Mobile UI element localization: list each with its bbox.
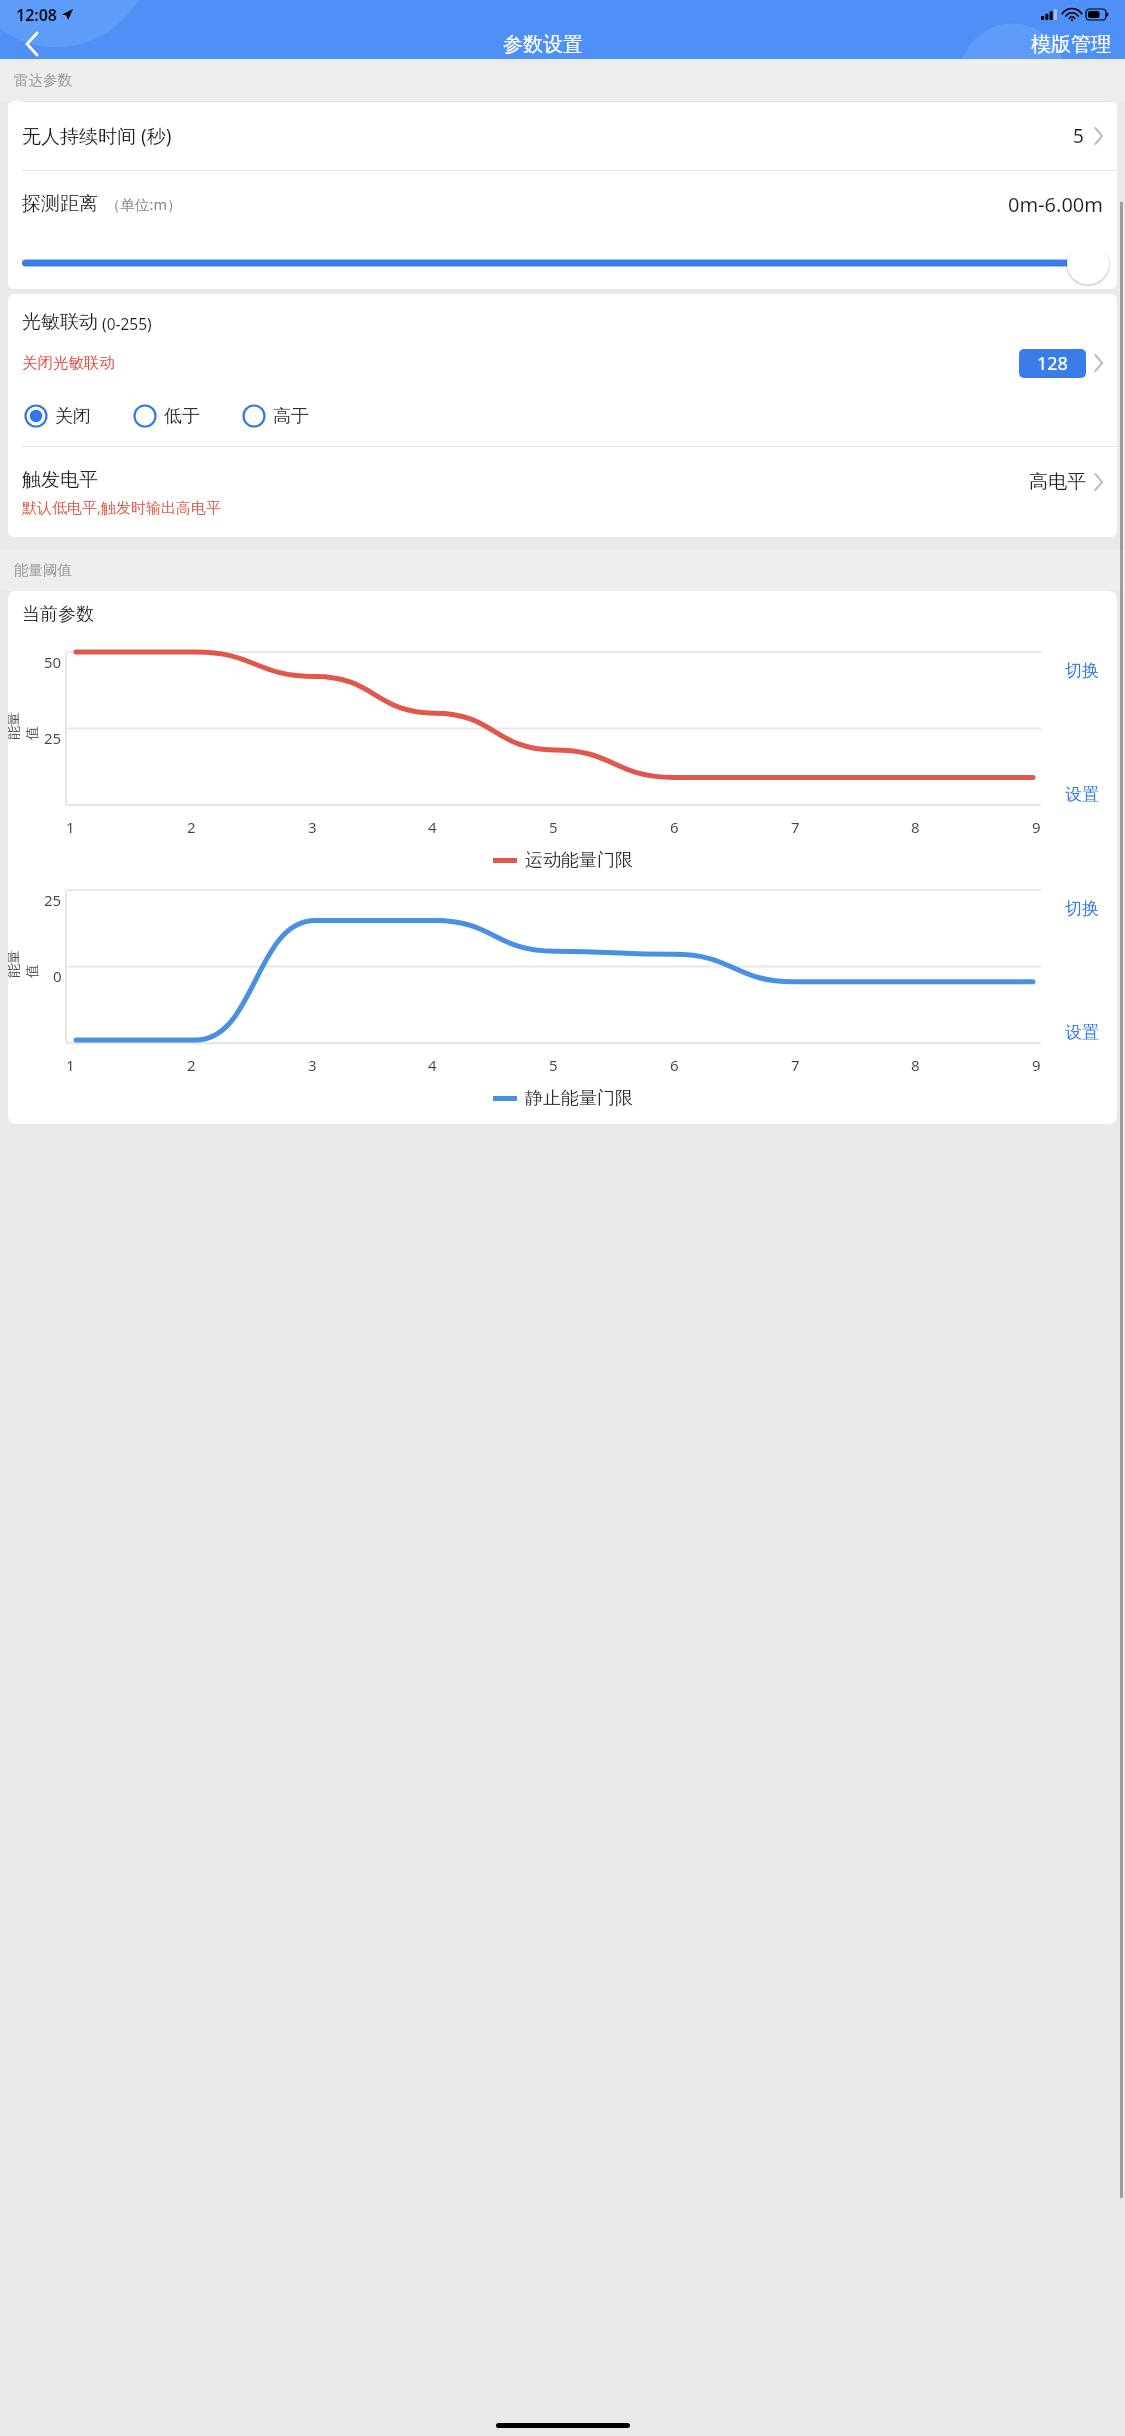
button[interactable]: 128 — [1019, 349, 1086, 378]
staticText: 1 — [66, 817, 75, 837]
staticText: 8 — [911, 1055, 920, 1075]
button[interactable]: 切换 — [1059, 892, 1105, 925]
staticText: 高电平 — [1029, 470, 1086, 494]
staticText: 当前参数 — [22, 603, 94, 626]
staticText: 7 — [791, 1055, 800, 1075]
staticText: 50 — [44, 652, 62, 672]
staticText: 4 — [428, 1055, 437, 1075]
staticText: 0m-6.00m — [1008, 191, 1103, 218]
staticText: 设置 — [1065, 784, 1099, 805]
button[interactable]: 模版管理 — [1023, 29, 1125, 59]
staticText: 7 — [791, 817, 800, 837]
staticText: 2 — [187, 1055, 196, 1075]
staticText: 3 — [308, 1055, 317, 1075]
staticText: 3 — [308, 817, 317, 837]
staticText: 探测距离 — [22, 192, 98, 216]
staticText: 6 — [670, 817, 679, 837]
staticText: 128 — [1037, 351, 1068, 376]
staticText: 6 — [670, 1055, 679, 1075]
button[interactable]: 触发电平 — [8, 447, 1117, 537]
staticText: 默认低电平,触发时输出高电平 — [22, 497, 222, 517]
button[interactable]: Back — [0, 29, 64, 59]
button[interactable]: 设置 — [1059, 1016, 1105, 1049]
staticText: 5 — [549, 817, 558, 837]
staticText: 切换 — [1065, 660, 1099, 681]
staticText: 5 — [1073, 123, 1084, 149]
staticText: 光敏联动 — [22, 310, 98, 334]
staticText: 12:08 — [16, 4, 58, 26]
staticText: 无人持续时间 (秒) — [22, 123, 172, 149]
staticText: 能量值 — [8, 948, 41, 978]
staticText: 能量值 — [8, 710, 41, 740]
staticText: 2 — [187, 817, 196, 837]
staticText: 能量阈值 — [14, 561, 72, 579]
staticText: 高于 — [273, 405, 309, 428]
button[interactable]: 探测距离 — [8, 171, 1117, 289]
staticText: 8 — [911, 817, 920, 837]
staticText: 雷达参数 — [14, 71, 72, 89]
staticText: 0 — [53, 966, 62, 986]
button[interactable]: 关闭 — [24, 404, 91, 428]
button[interactable]: 切换 — [1059, 654, 1105, 687]
button[interactable]: 无人持续时间 (秒) — [8, 102, 1117, 170]
staticText: (0-255) — [102, 313, 152, 334]
staticText: 切换 — [1065, 898, 1099, 919]
staticText: （单位:m） — [106, 194, 182, 214]
button[interactable]: 低于 — [133, 404, 200, 428]
staticText: 模版管理 — [1031, 32, 1111, 57]
staticText: 关闭光敏联动 — [22, 353, 115, 373]
staticText: 运动能量门限 — [525, 849, 633, 872]
staticText: 4 — [428, 817, 437, 837]
button[interactable]: 设置 — [1059, 778, 1105, 811]
staticText: 1 — [66, 1055, 75, 1075]
staticText: 静止能量门限 — [525, 1087, 633, 1110]
staticText: 设置 — [1065, 1022, 1099, 1043]
staticText: 25 — [44, 890, 62, 910]
staticText: 9 — [1032, 817, 1041, 837]
staticText: 低于 — [164, 405, 200, 428]
staticText: 25 — [44, 728, 62, 748]
staticText: 参数设置 — [503, 32, 583, 57]
staticText: 触发电平 — [22, 468, 98, 492]
staticText: 5 — [549, 1055, 558, 1075]
button[interactable]: 高于 — [242, 404, 309, 428]
staticText: 关闭 — [55, 405, 91, 428]
staticText: 9 — [1032, 1055, 1041, 1075]
